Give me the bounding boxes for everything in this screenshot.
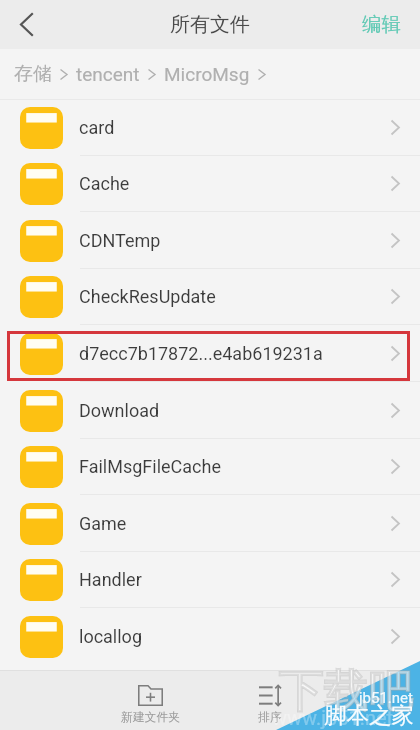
button[interactable]: tencent — [76, 63, 140, 85]
button[interactable]: d7ecc7b17872...e4ab619231a — [0, 325, 420, 382]
staticText: 编辑 — [362, 12, 401, 37]
button[interactable]: locallog — [0, 608, 420, 665]
button[interactable]: 编辑 — [346, 0, 420, 49]
staticText: 排序 — [258, 710, 282, 725]
button[interactable]: Handler — [0, 551, 420, 608]
button[interactable]: Game — [0, 495, 420, 552]
staticText: CDNTemp — [79, 230, 391, 251]
staticText: card — [79, 117, 391, 138]
staticText: locallog — [79, 626, 391, 647]
button[interactable]: Download — [0, 382, 420, 439]
button[interactable]: MicroMsg — [164, 63, 250, 85]
button[interactable]: 新建文件夹 — [95, 670, 205, 730]
staticText: www.jb51.net — [272, 706, 394, 729]
staticText: d7ecc7b17872...e4ab619231a — [79, 343, 391, 364]
staticText: 脚本之家 — [324, 701, 414, 729]
staticText: Download — [79, 400, 391, 421]
staticText: 下载吧 — [279, 663, 414, 720]
button[interactable]: Cache — [0, 155, 420, 212]
staticText: 下载吧 — [279, 663, 414, 720]
staticText: Game — [79, 513, 391, 534]
button[interactable]: FailMsgFileCache — [0, 438, 420, 495]
button[interactable]: Back — [0, 0, 52, 49]
staticText: 所有文件 — [170, 12, 250, 37]
staticText: FailMsgFileCache — [79, 456, 391, 477]
staticText: CheckResUpdate — [79, 286, 391, 307]
staticText: 新建文件夹 — [121, 710, 180, 725]
button[interactable]: 排序 — [215, 670, 325, 730]
button[interactable]: card — [0, 99, 420, 156]
button[interactable]: CDNTemp — [0, 212, 420, 269]
button[interactable]: 存储 — [14, 62, 52, 86]
staticText: jb51.net — [359, 689, 413, 707]
button[interactable]: CheckResUpdate — [0, 268, 420, 325]
staticText: Cache — [79, 173, 391, 194]
staticText: Handler — [79, 569, 391, 590]
